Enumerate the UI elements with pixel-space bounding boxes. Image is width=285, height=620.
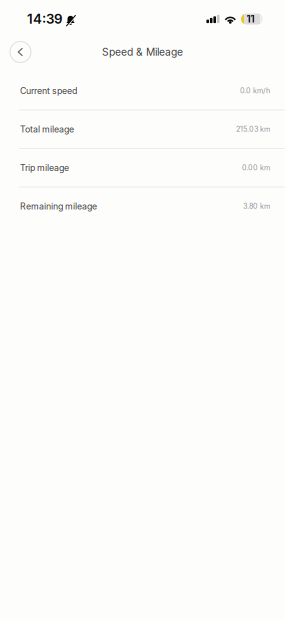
staticText: 0.0 km/h: [240, 86, 270, 95]
staticText: Trip mileage: [20, 162, 69, 173]
staticText: 14:39: [27, 11, 63, 27]
staticText: 0.00 km: [242, 163, 270, 172]
staticText: 3.80 km: [243, 202, 270, 211]
staticText: 215.03 km: [236, 125, 270, 134]
button[interactable]: Back: [5, 38, 36, 66]
staticText: Speed & Mileage: [102, 46, 183, 58]
staticText: Total mileage: [20, 124, 74, 134]
staticText: 11: [246, 13, 254, 25]
staticText: Current speed: [20, 85, 77, 96]
staticText: Remaining mileage: [20, 201, 97, 211]
